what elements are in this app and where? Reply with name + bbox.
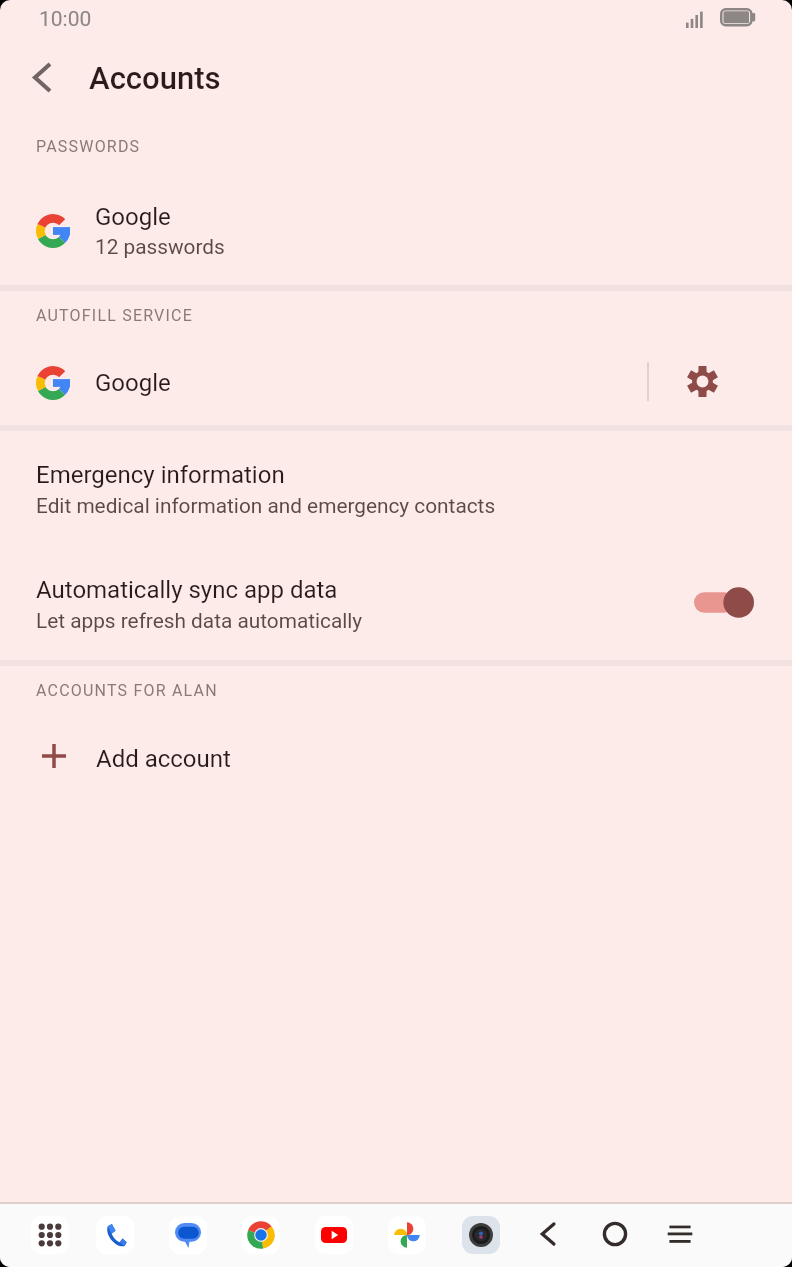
button[interactable]: Messages xyxy=(169,1216,207,1254)
button[interactable]: All apps xyxy=(31,1216,69,1254)
staticText: Add account xyxy=(96,745,231,773)
staticText: Let apps refresh data automatically xyxy=(36,609,363,633)
staticText: ACCOUNTS FOR ALAN xyxy=(36,681,218,700)
button[interactable]: Automatically sync app data xyxy=(688,578,760,626)
button[interactable]: Google xyxy=(0,352,646,414)
button[interactable]: Automatically sync app data xyxy=(0,568,792,645)
button[interactable]: Phone xyxy=(96,1216,134,1254)
button[interactable]: Home xyxy=(591,1210,639,1258)
button[interactable]: YouTube xyxy=(315,1216,353,1254)
button[interactable]: Camera xyxy=(462,1216,500,1254)
staticText: PASSWORDS xyxy=(36,137,141,156)
staticText: 12 passwords xyxy=(95,235,225,259)
button[interactable]: Back xyxy=(524,1210,572,1258)
staticText: Automatically sync app data xyxy=(36,576,338,604)
staticText: Google xyxy=(95,203,171,231)
button[interactable]: Google xyxy=(0,192,792,270)
button[interactable]: Recent apps xyxy=(656,1210,704,1258)
button[interactable]: Photos xyxy=(388,1216,426,1254)
staticText: 10:00 xyxy=(39,7,92,32)
staticText: Edit medical information and emergency c… xyxy=(36,494,496,518)
staticText: Google xyxy=(95,369,171,397)
staticText: Accounts xyxy=(89,60,221,96)
button[interactable]: Navigate up xyxy=(14,49,70,105)
button[interactable]: Add account xyxy=(0,726,792,788)
staticText: Emergency information xyxy=(36,461,285,489)
staticText: AUTOFILL SERVICE xyxy=(36,306,193,325)
button[interactable]: Autofill service settings xyxy=(650,350,754,412)
button[interactable]: Emergency information xyxy=(0,453,792,530)
button[interactable]: Chrome xyxy=(242,1216,280,1254)
